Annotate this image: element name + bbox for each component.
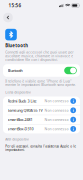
staticText: i: [73, 98, 74, 104]
staticText: Redmi Buds 3 Lite: [8, 98, 37, 103]
button[interactable]: Per gli accessori, consulta l'assistenza…: [0, 142, 83, 152]
button[interactable]: Redmi Buds 3 Lite: [3, 97, 80, 105]
staticText: Connetti agli accessori che puoi usare p…: [5, 50, 73, 62]
staticText: Non connesso: [44, 127, 68, 131]
button[interactable]: smartBox-D310: [3, 124, 80, 133]
staticText: Bluetooth: [5, 43, 28, 48]
button[interactable]: More info: [70, 106, 77, 115]
staticText: smartBox-2481: [8, 117, 33, 122]
staticText: Non connesso: [44, 99, 68, 103]
button[interactable]: More info: [70, 97, 77, 105]
staticText: i: [73, 117, 74, 122]
staticText: Altri dispositivi: [5, 137, 29, 142]
button[interactable]: More info: [70, 115, 77, 124]
button[interactable]: Samsung Q80A 55 TV: [3, 106, 80, 115]
staticText: i: [73, 126, 74, 132]
button[interactable]: Back: [0, 11, 15, 24]
staticText: Per gli accessori, consulta l'assistenza…: [5, 144, 76, 152]
button[interactable]: smartBox-2481: [3, 115, 80, 124]
staticText: Non connesso: [44, 117, 68, 122]
staticText: Lista dispositivi: [5, 90, 31, 95]
staticText: smartBox-D310: [8, 126, 34, 131]
staticText: i: [73, 108, 74, 113]
staticText: Il telefono è visibile come "iPhone di L…: [5, 79, 76, 87]
button[interactable]: Bluetooth on: [64, 67, 77, 74]
staticText: 15:56: [8, 2, 21, 8]
button[interactable]: More info: [70, 125, 77, 133]
staticText: Samsung Q80A 55 TV: [8, 108, 43, 113]
staticText: Non connesso: [44, 108, 68, 113]
staticText: Bluetooth: [8, 68, 23, 73]
